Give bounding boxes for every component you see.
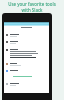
staticText: Use your favorite tools bbox=[8, 1, 56, 7]
staticText: with Slack bbox=[21, 7, 43, 13]
